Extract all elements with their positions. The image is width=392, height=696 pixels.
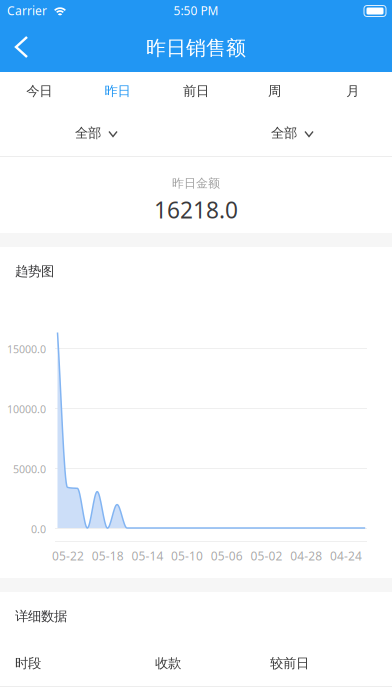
- staticText: Carrier: [7, 2, 47, 18]
- staticText: 时段: [15, 655, 41, 671]
- staticText: 16218.0: [154, 195, 238, 225]
- staticText: 0.0: [31, 522, 46, 536]
- staticText: 10000.0: [7, 402, 46, 416]
- staticText: 5:50 PM: [173, 2, 218, 18]
- staticText: 昨日销售额: [146, 36, 246, 60]
- button[interactable]: 昨日: [78, 72, 157, 110]
- staticText: 全部: [271, 125, 297, 141]
- button[interactable]: 返回: [0, 23, 47, 71]
- staticText: 04-28: [290, 548, 322, 564]
- staticText: 15000.0: [7, 342, 46, 356]
- staticText: 05-22: [52, 548, 84, 564]
- staticText: 04-24: [330, 548, 362, 564]
- staticText: 收款: [155, 655, 181, 671]
- button[interactable]: 全部: [196, 110, 392, 156]
- staticText: 周: [268, 83, 281, 99]
- staticText: 05-14: [131, 548, 163, 564]
- button[interactable]: 全部: [0, 110, 196, 156]
- staticText: 05-18: [92, 548, 124, 564]
- button[interactable]: 今日: [0, 72, 78, 110]
- staticText: 今日: [26, 83, 52, 99]
- staticText: 趋势图: [15, 263, 54, 279]
- staticText: 全部: [75, 125, 101, 141]
- button[interactable]: 周: [235, 72, 314, 110]
- staticText: 前日: [183, 83, 209, 99]
- staticText: 详细数据: [15, 608, 67, 624]
- staticText: 月: [346, 83, 359, 99]
- staticText: 05-10: [171, 548, 203, 564]
- staticText: 昨日金额: [172, 176, 220, 191]
- staticText: 较前日: [270, 655, 309, 671]
- button[interactable]: 前日: [157, 72, 235, 110]
- staticText: 昨日: [105, 83, 131, 99]
- button[interactable]: 月: [314, 72, 392, 110]
- staticText: 5000.0: [13, 462, 46, 476]
- staticText: 05-06: [211, 548, 243, 564]
- staticText: 05-02: [250, 548, 282, 564]
